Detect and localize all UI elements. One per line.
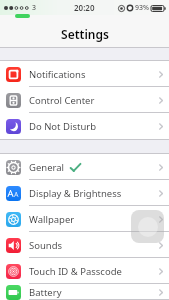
button[interactable]: Do Not Disturb xyxy=(0,113,169,139)
staticText: 93% xyxy=(135,3,149,13)
button[interactable]: Wallpaper xyxy=(0,206,169,232)
button[interactable]: AssistiveTouch xyxy=(131,210,164,243)
button[interactable]: Sounds xyxy=(0,232,169,258)
staticText: Battery xyxy=(29,286,62,299)
staticText: Control Center xyxy=(29,94,95,107)
button[interactable]: Notifications xyxy=(0,61,169,87)
staticText: Touch ID & Passcode xyxy=(29,265,122,278)
button[interactable]: General xyxy=(0,154,169,180)
staticText: Sounds xyxy=(29,239,63,252)
staticText: Notifications xyxy=(29,68,86,81)
staticText: General xyxy=(29,161,65,174)
staticText: 3 xyxy=(32,3,37,13)
staticText: Do Not Disturb xyxy=(29,120,97,133)
staticText: 20:20 xyxy=(74,2,95,13)
staticText: Settings xyxy=(61,26,109,42)
button[interactable]: Display & Brightness xyxy=(0,180,169,206)
staticText: Display & Brightness xyxy=(29,187,122,200)
button[interactable]: Control Center xyxy=(0,87,169,113)
button[interactable]: Touch ID & Passcode xyxy=(0,258,169,284)
staticText: Wallpaper xyxy=(29,213,75,226)
button[interactable]: Battery xyxy=(0,284,169,300)
